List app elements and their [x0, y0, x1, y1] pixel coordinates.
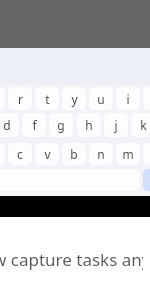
staticText: r	[18, 91, 23, 107]
button[interactable]: Key n	[89, 143, 113, 165]
button[interactable]: Key f	[22, 113, 46, 137]
button[interactable]: Key j	[104, 113, 128, 137]
button[interactable]: Key h	[77, 113, 101, 137]
staticText: v	[44, 146, 51, 162]
staticText: m	[122, 146, 134, 162]
staticText: u	[97, 91, 105, 107]
staticText: t	[45, 91, 50, 107]
staticText: c	[17, 146, 23, 162]
staticText: k	[140, 117, 147, 133]
button[interactable]: Key t	[35, 87, 59, 110]
button[interactable]: Enter	[143, 169, 150, 191]
staticText: i	[126, 91, 130, 107]
staticText: b	[70, 146, 78, 162]
button[interactable]: Key y	[62, 87, 86, 110]
button[interactable]: Key c	[8, 143, 32, 165]
button[interactable]: Key d	[0, 113, 19, 137]
button[interactable]: Key k	[131, 113, 150, 137]
button[interactable]: Key r	[8, 87, 32, 110]
button[interactable]: Key g	[49, 113, 73, 137]
staticText: w capture tasks anywhere	[0, 248, 143, 271]
staticText: g	[57, 117, 65, 133]
staticText: f	[32, 117, 37, 133]
button[interactable]: Key v	[35, 143, 59, 165]
staticText: n	[97, 146, 105, 162]
staticText: d	[3, 117, 11, 133]
staticText: y	[71, 91, 78, 107]
button[interactable]: Key m	[116, 143, 140, 165]
staticText: h	[85, 117, 93, 133]
staticText: j	[114, 117, 118, 133]
button[interactable]: Key b	[62, 143, 86, 165]
button[interactable]: Key u	[89, 87, 113, 110]
button[interactable]: Key i	[116, 87, 140, 110]
